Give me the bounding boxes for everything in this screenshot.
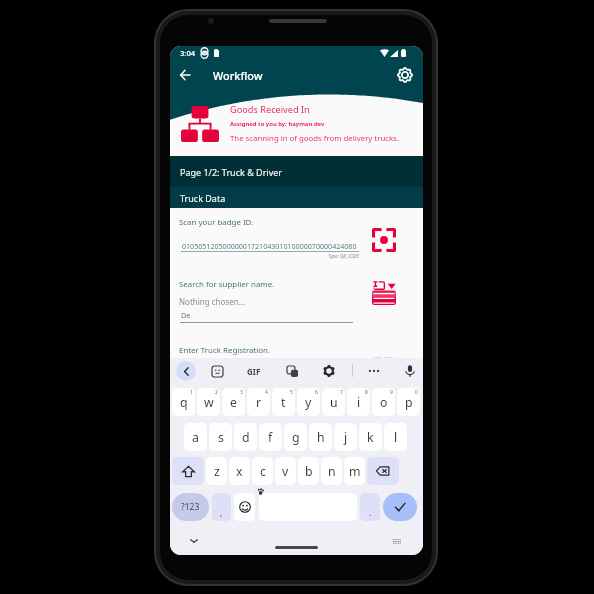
staticText: w bbox=[204, 394, 214, 411]
staticText: 3:04 bbox=[180, 48, 196, 58]
staticText: Truck Data bbox=[180, 192, 226, 204]
staticText: q bbox=[180, 394, 188, 411]
staticText: 7 bbox=[340, 389, 343, 396]
button[interactable]: k bbox=[359, 423, 382, 451]
button[interactable]: q bbox=[172, 388, 195, 416]
button[interactable]: Switch keyboard bbox=[390, 534, 404, 548]
button[interactable]: ?123 bbox=[172, 493, 209, 521]
button[interactable]: j bbox=[334, 423, 357, 451]
button[interactable]: Hide keyboard bbox=[187, 534, 201, 548]
button[interactable]: n bbox=[321, 457, 342, 485]
staticText: r bbox=[256, 394, 262, 411]
staticText: b bbox=[305, 463, 313, 480]
button[interactable]: Pick supplier bbox=[367, 276, 401, 310]
staticText: De bbox=[181, 310, 191, 320]
staticText: , bbox=[220, 506, 223, 518]
button[interactable]: u bbox=[322, 388, 345, 416]
button[interactable]: Truck Data bbox=[170, 187, 423, 208]
button[interactable]: e bbox=[222, 388, 245, 416]
button[interactable]: z bbox=[206, 457, 227, 485]
button[interactable]: i bbox=[347, 388, 370, 416]
button[interactable]: b bbox=[298, 457, 319, 485]
button[interactable]: Backspace bbox=[367, 457, 399, 485]
button[interactable]: f bbox=[259, 423, 282, 451]
staticText: e bbox=[230, 394, 237, 411]
button[interactable]: a bbox=[184, 423, 207, 451]
staticText: . bbox=[369, 506, 372, 518]
button[interactable]: GIF bbox=[243, 361, 265, 381]
staticText: t bbox=[281, 394, 286, 411]
button[interactable]: r bbox=[247, 388, 270, 416]
staticText: c bbox=[260, 463, 266, 480]
staticText: Enter Truck Registration. bbox=[179, 345, 271, 356]
button[interactable]: Page 1/2: Truck & Driver bbox=[170, 156, 423, 187]
staticText: f bbox=[268, 429, 273, 446]
staticText: n bbox=[328, 463, 336, 480]
staticText: l bbox=[394, 429, 398, 446]
button[interactable]: s bbox=[209, 423, 232, 451]
staticText: 8 bbox=[365, 389, 368, 396]
button[interactable]: Voice input bbox=[399, 360, 421, 382]
staticText: m bbox=[349, 463, 361, 480]
button[interactable]: g bbox=[284, 423, 307, 451]
staticText: 2 bbox=[215, 389, 218, 396]
button[interactable]: Stickers bbox=[206, 360, 228, 382]
button[interactable]: h bbox=[309, 423, 332, 451]
staticText: u bbox=[330, 394, 338, 411]
button[interactable]: Space bbox=[259, 493, 357, 521]
staticText: Goods Received In bbox=[230, 103, 310, 116]
button[interactable]: Enter bbox=[383, 493, 417, 521]
button[interactable]: o bbox=[372, 388, 395, 416]
button[interactable]: . bbox=[360, 493, 380, 521]
button[interactable]: m bbox=[344, 457, 365, 485]
button[interactable]: Shift bbox=[172, 457, 204, 485]
staticText: 6 bbox=[315, 389, 318, 396]
button[interactable]: w bbox=[197, 388, 220, 416]
button[interactable]: p bbox=[397, 388, 420, 416]
staticText: p bbox=[405, 394, 413, 411]
button[interactable]: Keyboard settings bbox=[319, 361, 339, 381]
staticText: ?123 bbox=[181, 501, 200, 513]
button[interactable]: l bbox=[384, 423, 407, 451]
button[interactable]: v bbox=[275, 457, 296, 485]
staticText: y bbox=[305, 394, 312, 411]
button[interactable]: , bbox=[212, 493, 231, 521]
button[interactable]: Back bbox=[173, 63, 197, 87]
staticText: i bbox=[357, 394, 361, 411]
button[interactable]: Truck registration input bbox=[366, 336, 400, 370]
staticText: s bbox=[218, 429, 224, 446]
staticText: g bbox=[292, 429, 300, 446]
staticText: 9 bbox=[390, 389, 393, 396]
staticText: Nothing chosen... bbox=[179, 296, 246, 307]
staticText: Type: QR_CODE bbox=[320, 253, 359, 259]
staticText: Page 1/2: Truck & Driver bbox=[180, 166, 283, 178]
staticText: j bbox=[344, 429, 348, 446]
staticText: Search for supplier name. bbox=[179, 279, 275, 290]
staticText: 3 bbox=[240, 389, 243, 396]
staticText: 4 bbox=[265, 389, 268, 396]
button[interactable]: y bbox=[297, 388, 320, 416]
button[interactable]: Translate bbox=[281, 360, 303, 382]
staticText: z bbox=[214, 463, 220, 480]
staticText: Workflow bbox=[213, 68, 263, 83]
staticText: Assigned to you by: hayman.dev bbox=[230, 120, 325, 128]
button[interactable]: Settings bbox=[393, 63, 417, 87]
staticText: x bbox=[236, 463, 243, 480]
staticText: 0 bbox=[415, 389, 418, 396]
staticText: The scanning in of goods from delivery t… bbox=[230, 133, 399, 144]
staticText: a bbox=[192, 429, 199, 446]
button[interactable]: t bbox=[272, 388, 295, 416]
staticText: v bbox=[282, 463, 289, 480]
staticText: o bbox=[380, 394, 388, 411]
staticText: h bbox=[317, 429, 325, 446]
button[interactable]: d bbox=[234, 423, 257, 451]
button[interactable]: More options bbox=[363, 360, 385, 382]
staticText: GIF bbox=[247, 366, 261, 377]
staticText: 0105051205000000172104301010000070000424… bbox=[182, 241, 357, 251]
button[interactable]: x bbox=[229, 457, 250, 485]
staticText: Scan your badge ID. bbox=[179, 217, 254, 228]
button[interactable]: c bbox=[252, 457, 273, 485]
button[interactable]: Scan badge bbox=[367, 223, 401, 257]
button[interactable]: Expand toolbar bbox=[176, 361, 196, 381]
button[interactable]: Emoji bbox=[234, 493, 255, 521]
